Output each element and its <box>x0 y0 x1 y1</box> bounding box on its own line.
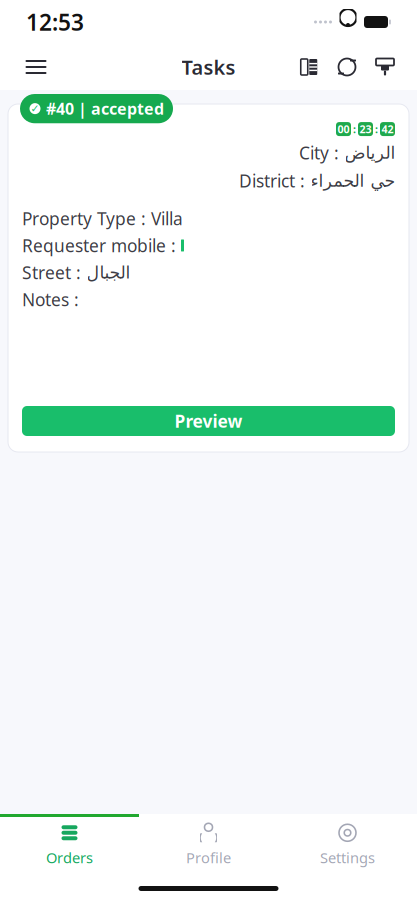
staticText: حي الحمراء <box>310 171 395 191</box>
staticText: Street : <box>22 261 86 284</box>
staticText: 00 <box>337 122 349 136</box>
staticText: Orders <box>46 848 93 867</box>
button[interactable]: Menu <box>14 45 58 89</box>
staticText: 23 <box>359 122 371 136</box>
staticText: 42 <box>381 122 393 136</box>
staticText: Preview <box>174 409 242 432</box>
button[interactable]: Refresh <box>327 45 367 89</box>
staticText: 12:53 <box>26 7 84 37</box>
staticText: الرياض <box>344 143 395 162</box>
staticText: : <box>353 122 356 136</box>
staticText: Settings <box>320 848 375 867</box>
button[interactable]: Settings <box>278 817 417 873</box>
staticText: Profile <box>186 848 231 867</box>
button[interactable]: Profile <box>139 817 278 873</box>
staticText: الجبال <box>86 263 130 282</box>
button[interactable]: Orders <box>0 817 139 873</box>
button[interactable]: Preview <box>22 406 395 436</box>
staticText: ✓ <box>30 103 39 115</box>
staticText: Tasks <box>181 54 235 80</box>
staticText: Requester mobile : <box>22 234 181 257</box>
staticText: Property Type : Villa <box>22 207 183 230</box>
button[interactable]: Map <box>291 45 327 89</box>
staticText: City : <box>299 141 344 164</box>
staticText: District : <box>239 169 310 192</box>
staticText: #40 | accepted <box>46 98 164 119</box>
staticText: Notes : <box>22 288 79 311</box>
staticText: : <box>375 122 378 136</box>
button[interactable]: Filter <box>367 45 403 89</box>
